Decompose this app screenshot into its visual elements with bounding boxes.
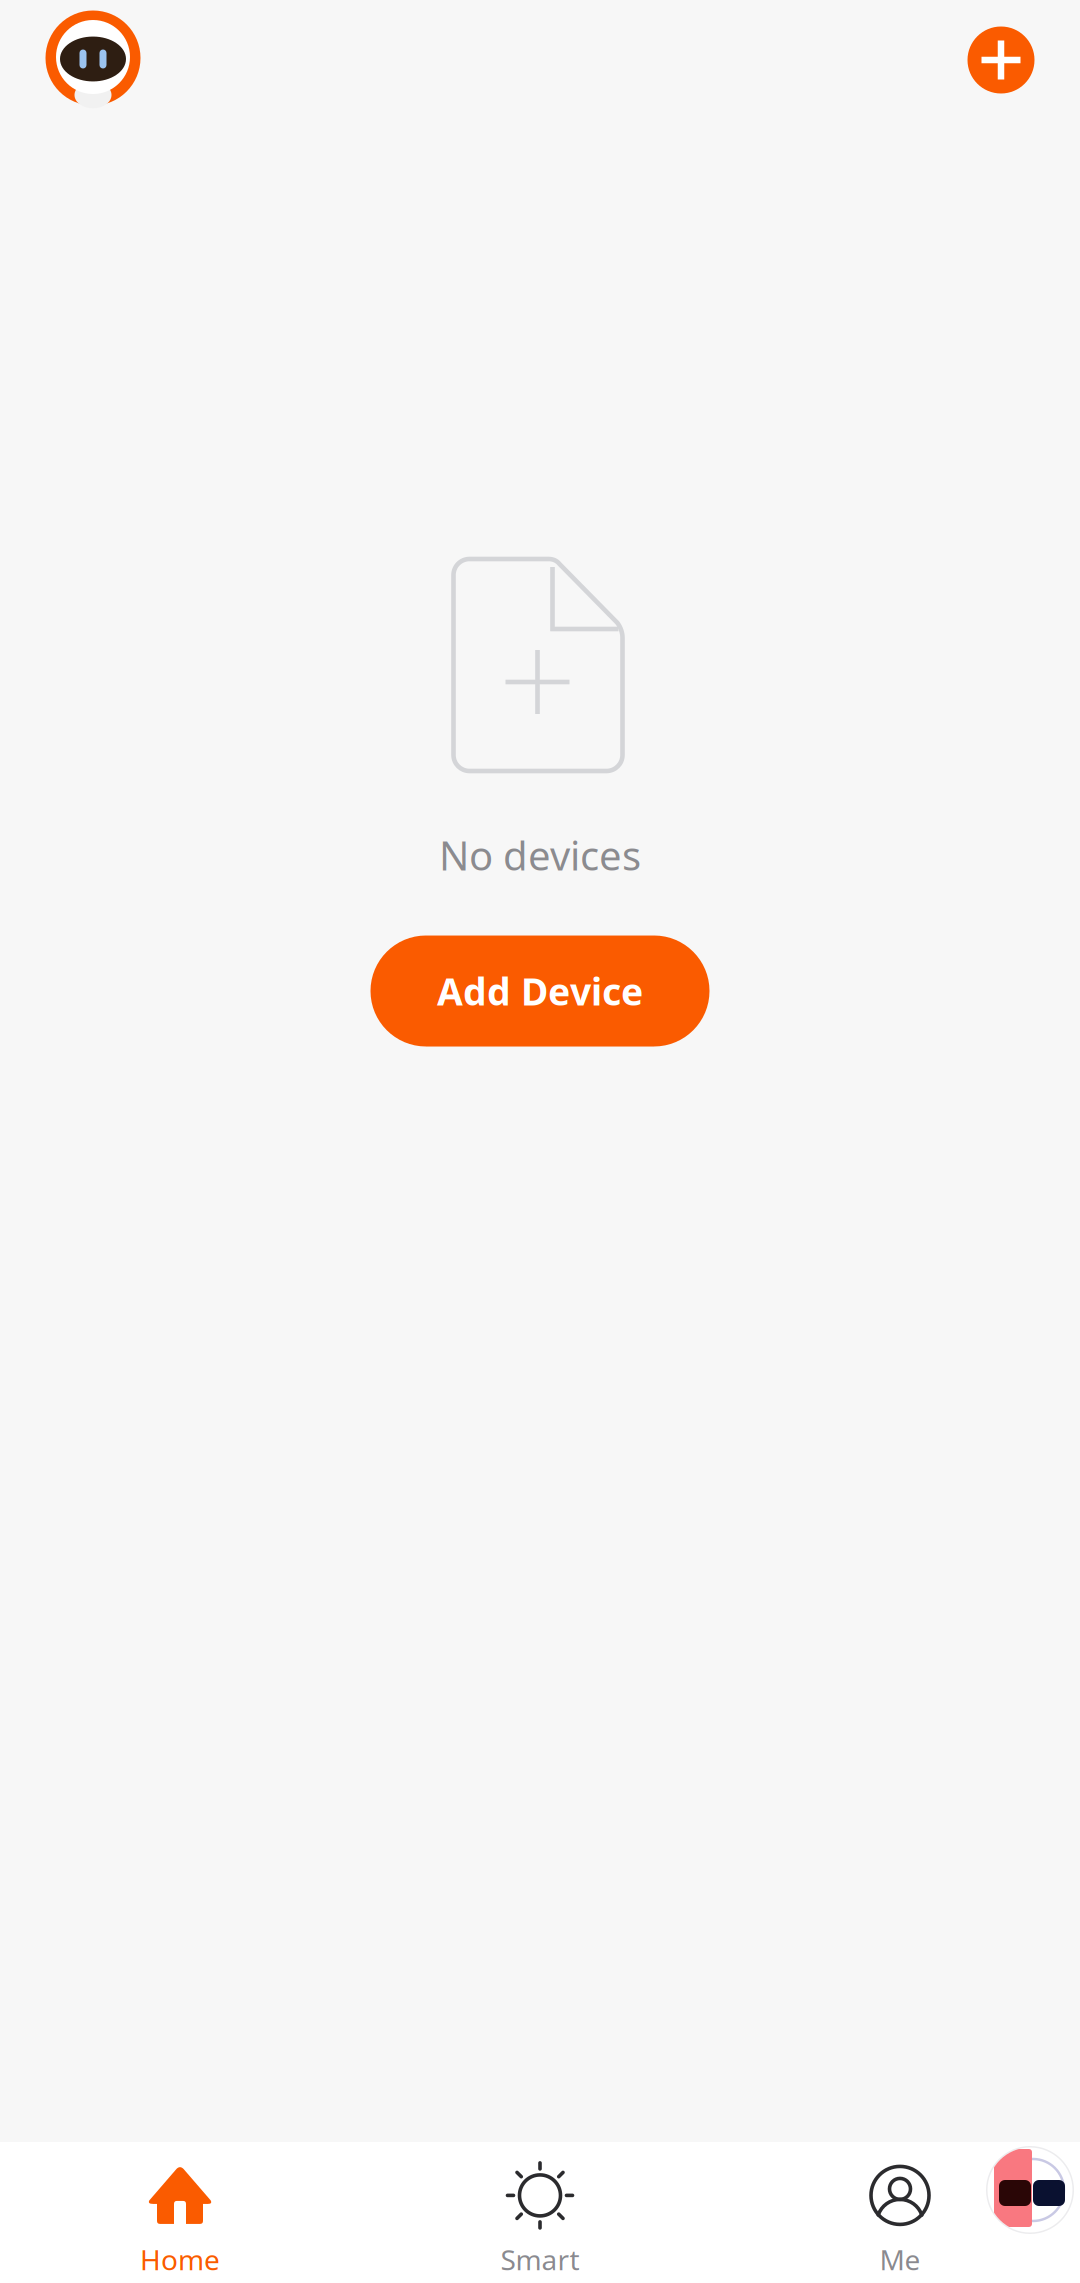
button[interactable]: Profile <box>45 10 140 105</box>
staticText: No devices <box>439 828 641 881</box>
staticText: Smart <box>500 2241 579 2278</box>
button[interactable]: Home <box>0 2167 360 2278</box>
staticText: Add Device <box>437 966 643 1016</box>
button[interactable]: Smart <box>360 2167 720 2278</box>
button[interactable]: Add device <box>967 26 1034 93</box>
button[interactable]: Scan <box>986 2146 1074 2234</box>
button[interactable]: Me <box>720 2167 1080 2278</box>
staticText: Me <box>879 2241 920 2278</box>
staticText: Home <box>140 2241 220 2278</box>
button[interactable]: Add Device <box>370 935 709 1046</box>
